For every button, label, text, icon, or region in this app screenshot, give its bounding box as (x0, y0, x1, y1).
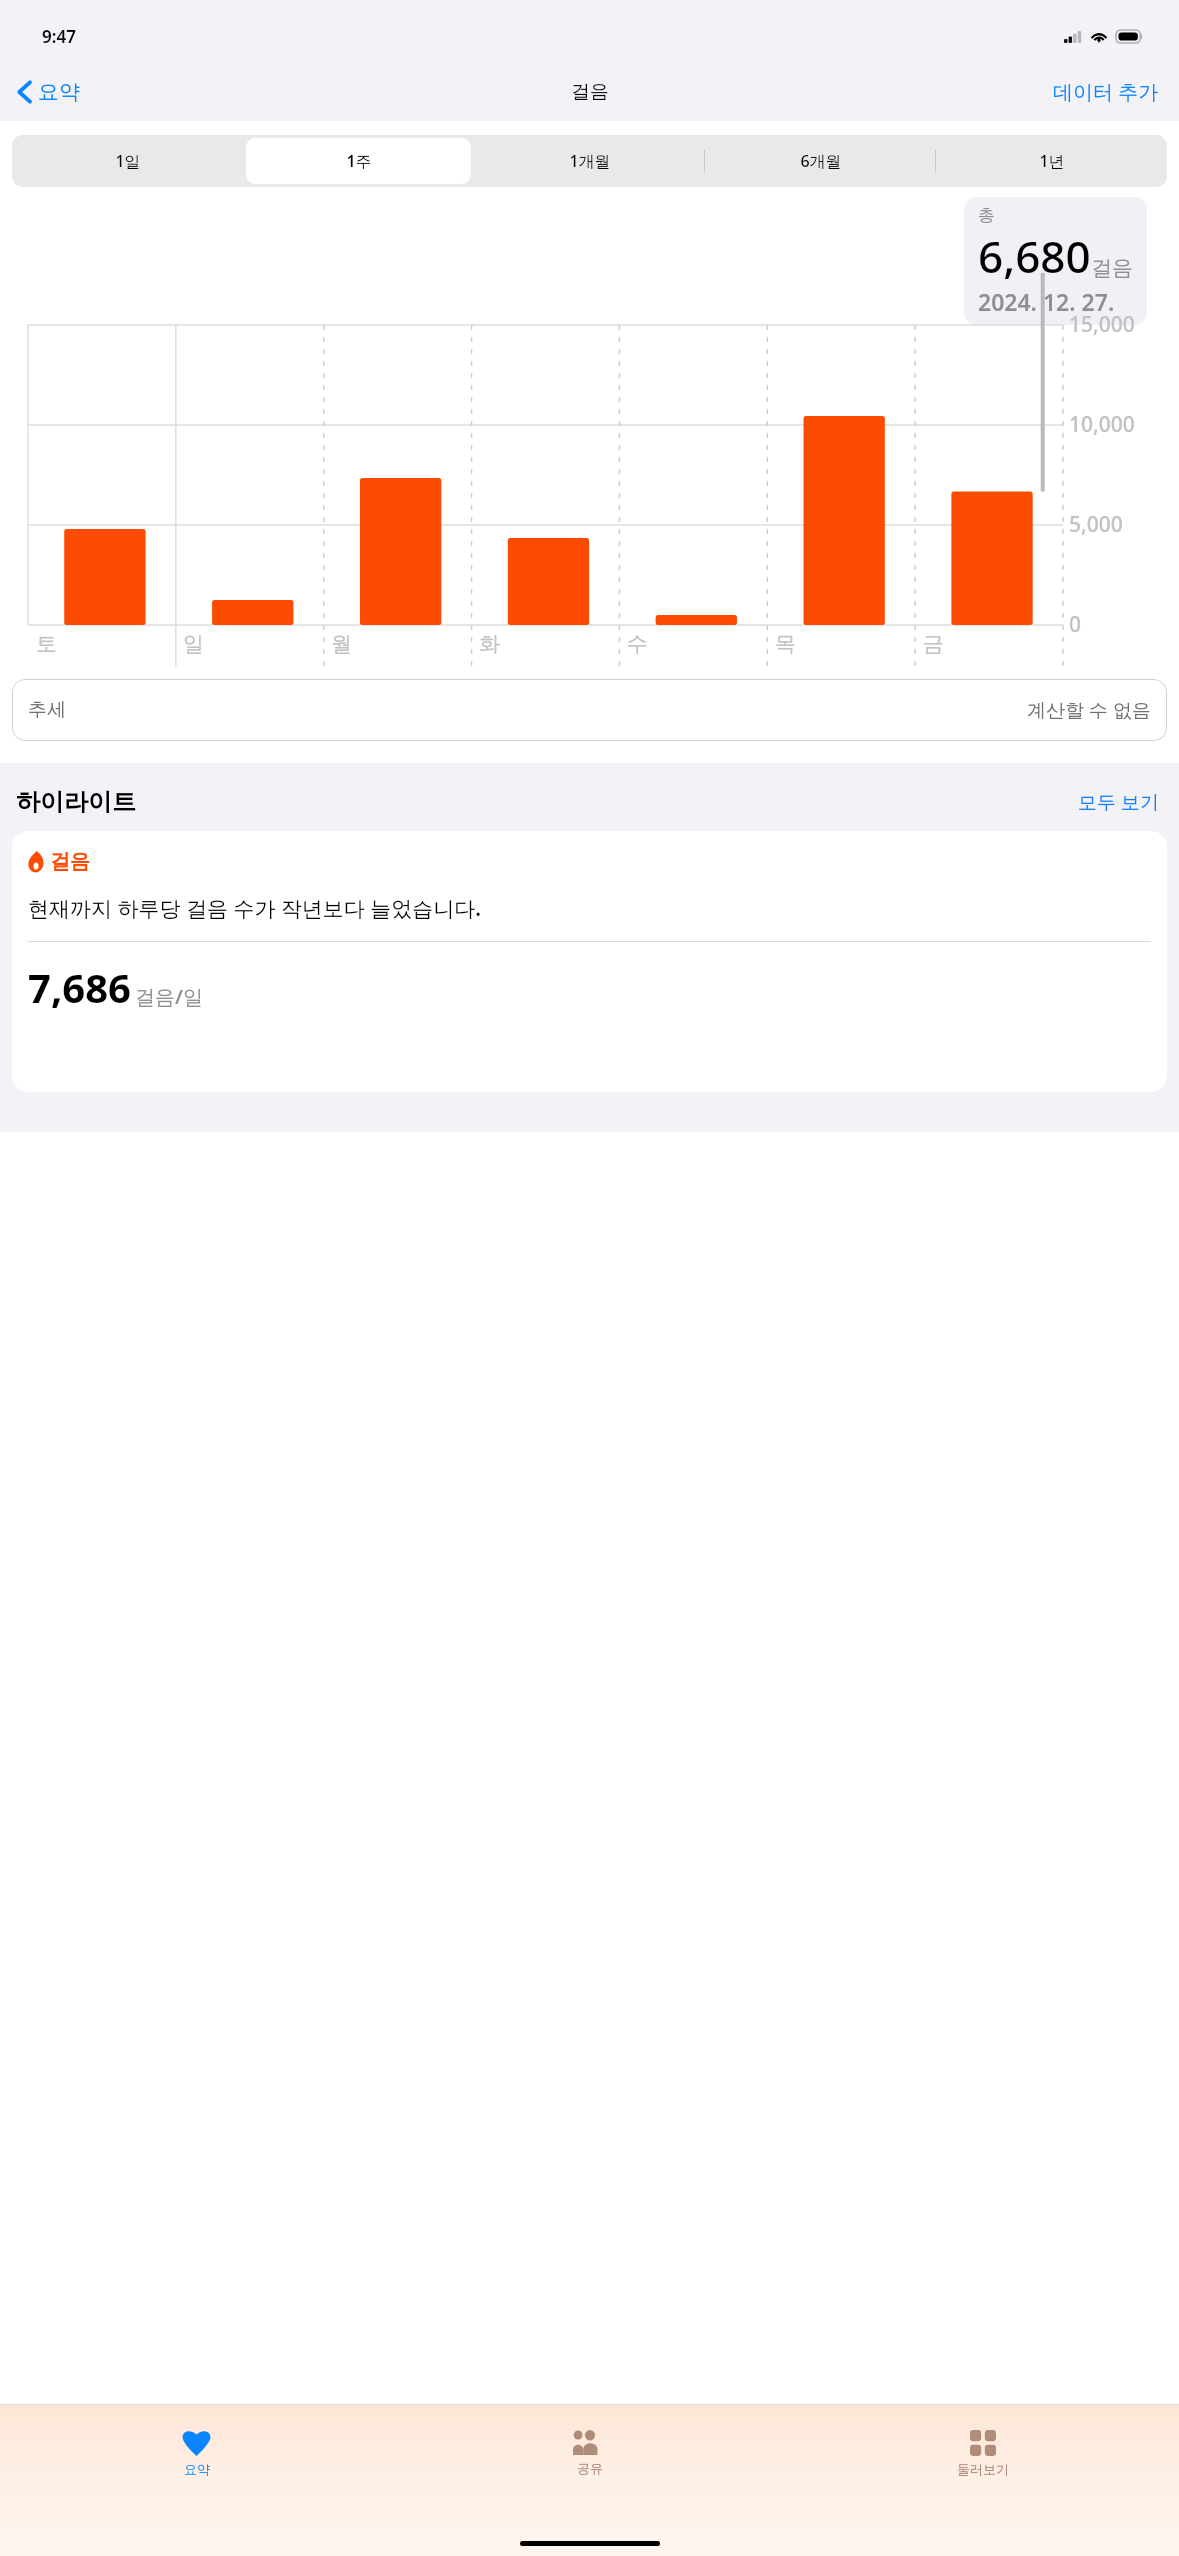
button[interactable]: 요약 (0, 2405, 393, 2501)
staticText: 5,000 (1069, 510, 1123, 539)
staticText: 9:47 (42, 25, 76, 48)
staticText: 월 (331, 631, 352, 657)
staticText: 요약 (184, 2461, 210, 2477)
staticText: 총 (978, 205, 995, 226)
button[interactable]: 1년 (939, 138, 1164, 184)
button[interactable]: 추세 (12, 679, 1167, 741)
staticText: 목 (775, 631, 796, 657)
button[interactable]: 1개월 (477, 138, 702, 184)
staticText: 걸음 (50, 849, 90, 874)
button[interactable]: 1주 (246, 138, 471, 184)
staticText: 7,686 (28, 960, 131, 1014)
staticText: 추세 (28, 698, 66, 722)
staticText: 하이라이트 (16, 787, 136, 817)
button[interactable]: 둘러보기 (786, 2405, 1179, 2501)
staticText: 둘러보기 (957, 2461, 1009, 2477)
staticText: 10,000 (1069, 410, 1135, 439)
staticText: 0 (1069, 610, 1082, 639)
staticText: 2024. 12. 27. (978, 286, 1115, 317)
staticText: 6개월 (800, 150, 842, 172)
staticText: 수 (627, 631, 648, 657)
staticText: 현재까지 하루당 걸음 수가 작년보다 늘었습니다. (28, 894, 482, 923)
staticText: 걸음/일 (135, 983, 203, 1010)
staticText: 1일 (115, 150, 141, 172)
button[interactable]: 6개월 (708, 138, 933, 184)
staticText: 1년 (1039, 150, 1065, 172)
staticText: 6,680 (978, 226, 1091, 286)
staticText: 데이터 추가 (1053, 78, 1159, 105)
staticText: 15,000 (1069, 310, 1135, 339)
staticText: 1개월 (569, 150, 611, 172)
staticText: 1주 (346, 150, 372, 172)
staticText: 일 (183, 631, 204, 657)
staticText: 걸음 (1091, 255, 1133, 281)
staticText: 요약 (38, 79, 80, 105)
button[interactable]: 1일 (15, 138, 240, 184)
staticText: 화 (479, 631, 500, 657)
button[interactable]: 공유 (393, 2405, 786, 2501)
staticText: 공유 (577, 2460, 603, 2476)
button[interactable]: 걸음 (12, 831, 1167, 1092)
staticText: 모두 보기 (1078, 789, 1159, 815)
staticText: 계산할 수 없음 (1027, 697, 1151, 723)
button[interactable]: 요약 (12, 75, 86, 109)
staticText: 토 (36, 631, 57, 657)
button[interactable]: 데이터 추가 (1047, 74, 1165, 109)
button[interactable]: 모두 보기 (1074, 787, 1163, 817)
staticText: 금 (923, 631, 944, 657)
staticText: 걸음 (571, 80, 609, 104)
